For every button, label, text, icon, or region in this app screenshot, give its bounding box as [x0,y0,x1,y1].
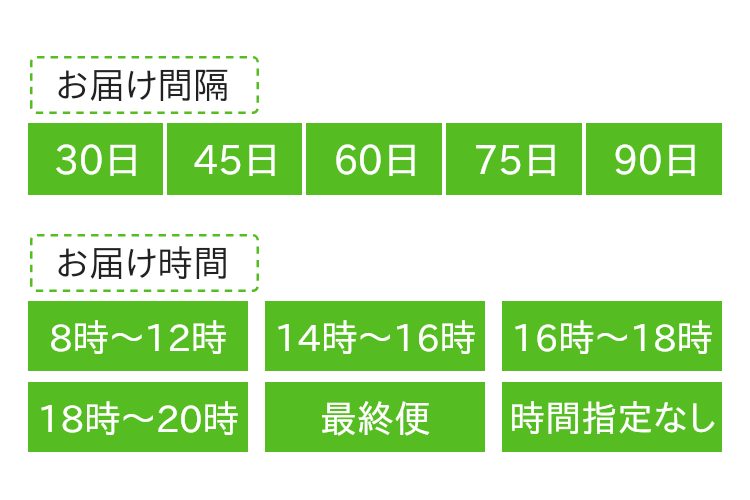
button[interactable]: 75日 [446,123,582,195]
staticText: 時間指定なし [509,399,716,435]
staticText: お届け時間 [56,244,230,280]
button[interactable]: 45日 [167,123,302,195]
button[interactable]: 8時〜12時 [28,301,248,371]
staticText: 14時〜16時 [274,318,477,355]
staticText: 75日 [473,140,562,179]
staticText: 45日 [193,140,282,179]
button[interactable]: 18時〜20時 [28,382,248,452]
staticText: 18時〜20時 [37,399,240,436]
staticText: 90日 [613,140,702,179]
staticText: 30日 [54,140,143,179]
button[interactable]: 30日 [28,123,163,195]
button[interactable]: 14時〜16時 [265,301,485,371]
button[interactable]: 時間指定なし [502,382,722,452]
staticText: 最終便 [320,399,431,436]
staticText: お届け間隔 [56,66,230,102]
button[interactable]: 16時〜18時 [502,301,722,371]
staticText: 8時〜12時 [49,318,228,355]
button[interactable]: 60日 [306,123,442,195]
staticText: 60日 [333,140,422,179]
staticText: 16時〜18時 [511,318,714,355]
button[interactable]: 90日 [586,123,722,195]
button[interactable]: 最終便 [265,382,485,452]
